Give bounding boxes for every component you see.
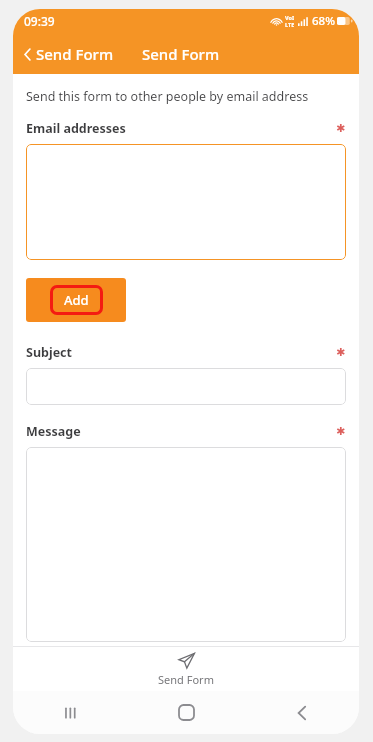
button[interactable]: Recent apps: [13, 691, 129, 734]
staticText: Add: [64, 291, 89, 309]
staticText: 09:39: [24, 13, 55, 29]
staticText: ✱: [336, 346, 346, 359]
staticText: LTE: [285, 21, 295, 28]
staticText: VoI: [285, 14, 295, 21]
staticText: Send Form: [36, 44, 114, 64]
button[interactable]: Add: [26, 278, 126, 322]
button[interactable]: [26, 368, 346, 405]
button[interactable]: Send Form: [13, 647, 359, 691]
staticText: Subject: [26, 344, 72, 361]
staticText: ✱: [336, 425, 346, 438]
staticText: Send this form to other people by email …: [26, 88, 309, 105]
button[interactable]: Send Form: [19, 39, 119, 69]
button[interactable]: Home: [129, 691, 244, 734]
staticText: Email addresses: [26, 120, 126, 137]
staticText: 68%: [312, 13, 335, 29]
staticText: ✱: [336, 122, 346, 135]
button[interactable]: [26, 447, 346, 642]
button[interactable]: Back: [244, 691, 359, 734]
staticText: Send Form: [142, 44, 220, 64]
staticText: Message: [26, 423, 81, 440]
staticText: Send Form: [158, 672, 214, 687]
button[interactable]: [26, 144, 346, 260]
